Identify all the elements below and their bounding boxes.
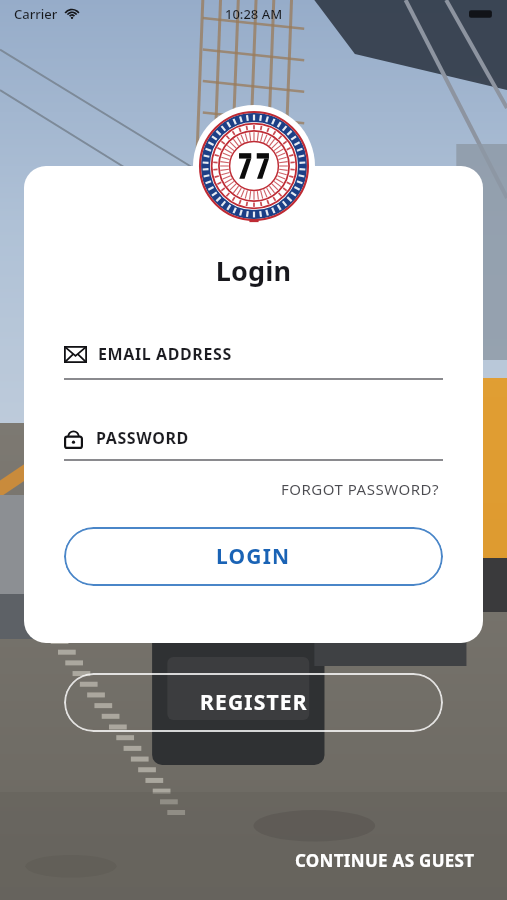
staticText: 10:28 AM [225, 5, 283, 23]
button[interactable]: LOGIN [64, 527, 443, 586]
button[interactable]: FORGOT PASSWORD? [277, 475, 443, 503]
button[interactable]: EMAIL ADDRESS [64, 343, 443, 380]
staticText: Carrier [14, 5, 58, 23]
staticText: PASSWORD [96, 427, 189, 449]
staticText: Login [24, 252, 483, 289]
button[interactable]: PASSWORD [64, 427, 443, 461]
staticText: EMAIL ADDRESS [98, 343, 232, 365]
staticText: LOGIN [216, 542, 291, 571]
button[interactable]: CONTINUE AS GUEST [291, 845, 479, 876]
staticText: REGISTER [200, 688, 308, 717]
button[interactable]: REGISTER [64, 673, 443, 732]
staticText: CONTINUE AS GUEST [295, 849, 475, 872]
